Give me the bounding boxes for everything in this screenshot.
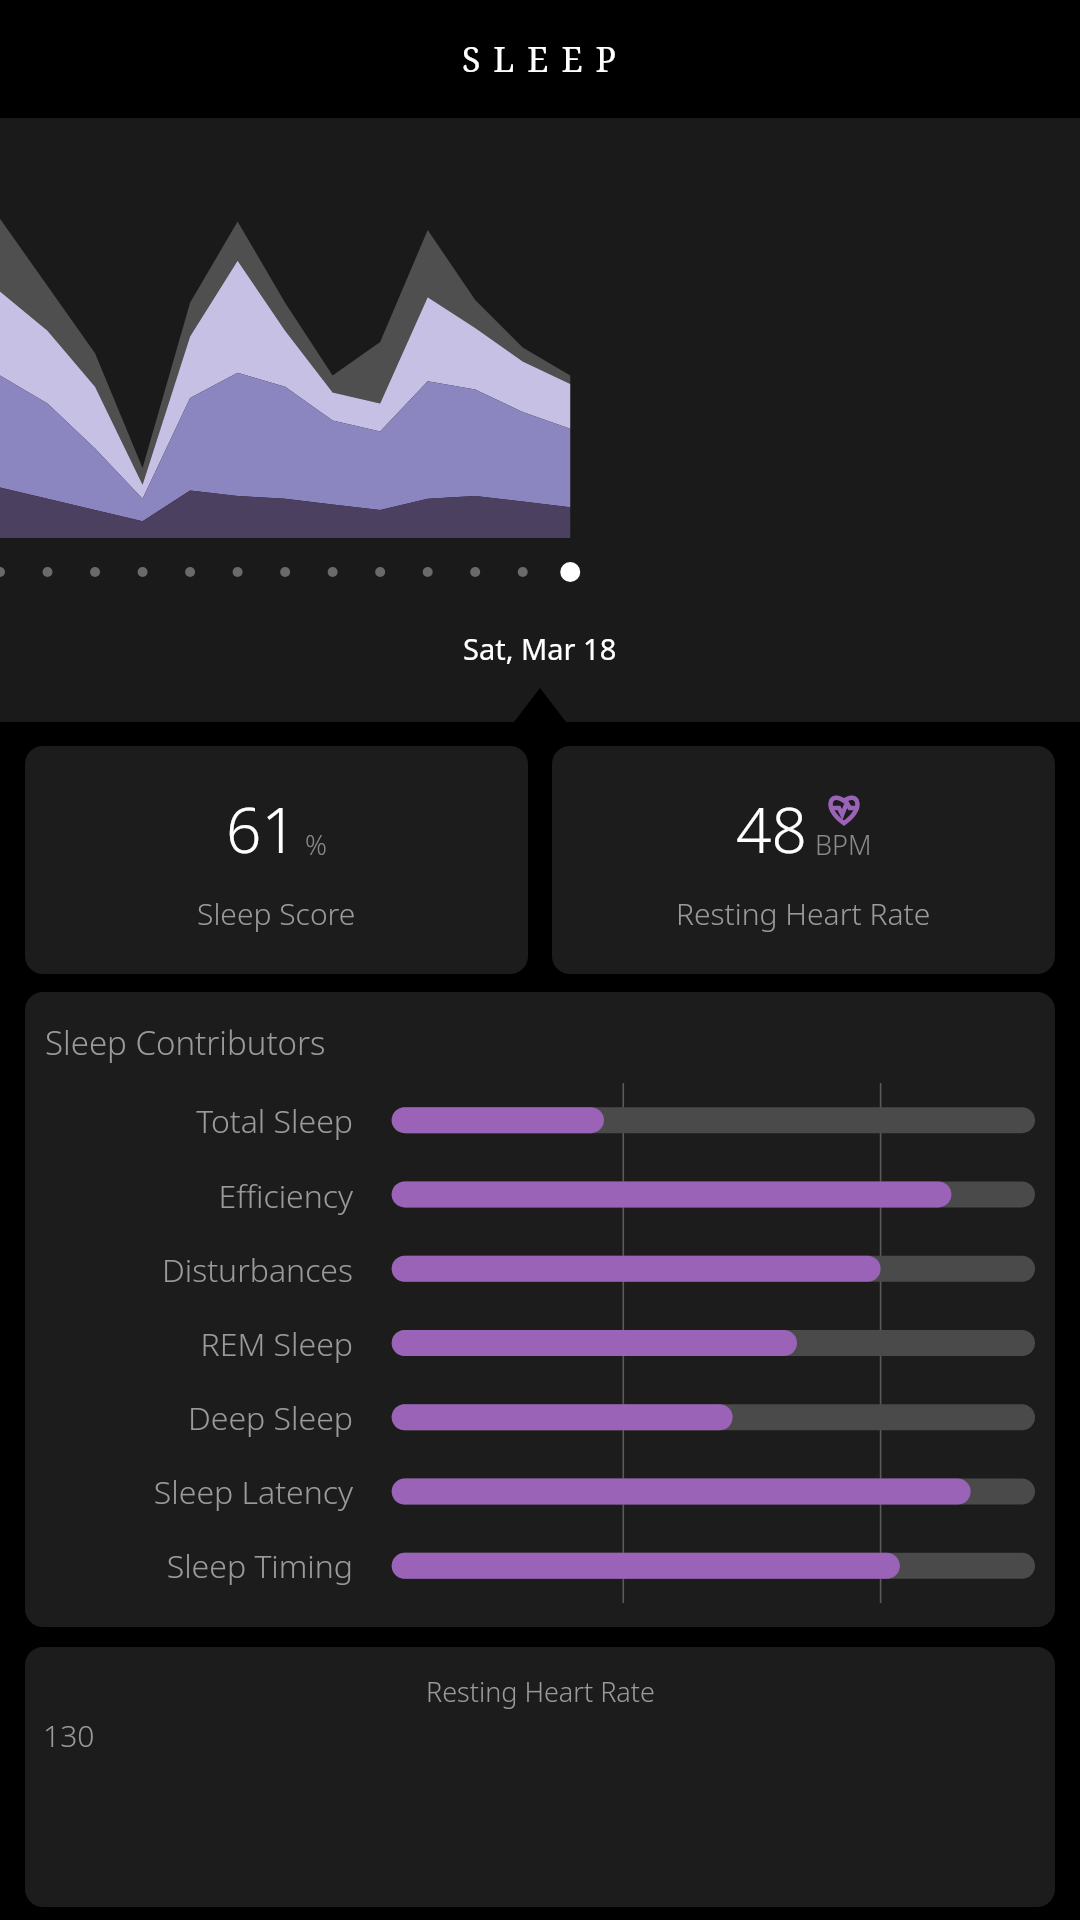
staticText: Sleep Score (197, 893, 356, 934)
button[interactable]: 48 (552, 746, 1055, 974)
staticText: Resting Heart Rate (426, 1673, 655, 1710)
button[interactable]: Sleep Contributors (25, 992, 1055, 1627)
staticText: REM Sleep (25, 1322, 353, 1366)
staticText: Resting Heart Rate (676, 893, 931, 934)
staticText: 48 (736, 787, 807, 871)
staticText: 130 (43, 1715, 95, 1756)
staticText: Sat, Mar 18 (463, 629, 617, 668)
staticText: Efficiency (25, 1174, 353, 1218)
staticText: Total Sleep (25, 1099, 353, 1143)
staticText: % (305, 826, 327, 863)
staticText: Sleep Latency (25, 1470, 353, 1514)
other: Heart rate (826, 790, 862, 826)
staticText: BPM (815, 826, 872, 863)
staticText: Deep Sleep (25, 1396, 353, 1440)
button[interactable]: Resting Heart Rate (25, 1647, 1055, 1907)
staticText: 61 (226, 787, 297, 871)
staticText: S L E E P (462, 36, 618, 82)
staticText: Sleep Contributors (45, 1020, 326, 1065)
staticText: Sleep Timing (25, 1544, 353, 1588)
staticText: Disturbances (25, 1248, 353, 1292)
button[interactable]: 61 (25, 746, 528, 974)
